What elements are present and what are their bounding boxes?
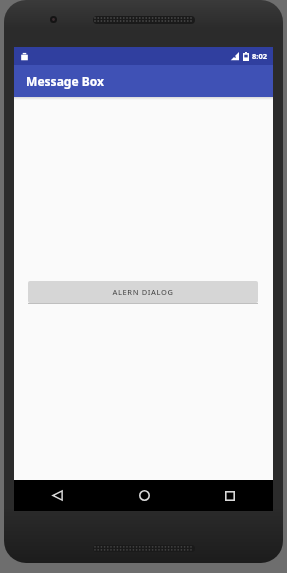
button[interactable]: Home xyxy=(101,480,187,511)
button[interactable]: ALERN DIALOG xyxy=(28,281,258,303)
staticText: Message Box xyxy=(26,73,104,89)
button[interactable]: Recent apps xyxy=(187,480,273,511)
staticText: 8:02 xyxy=(252,51,267,61)
staticText: ALERN DIALOG xyxy=(112,287,174,297)
button[interactable]: Back xyxy=(14,480,101,511)
